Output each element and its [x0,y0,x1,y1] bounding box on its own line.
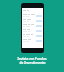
button[interactable] [22,23,43,28]
button[interactable] [22,18,43,23]
staticText: de Investimento [19,61,46,65]
button[interactable] [22,28,43,33]
button[interactable] [22,38,43,43]
staticText: Invista em Fundos [17,57,47,61]
button[interactable] [22,33,43,38]
button[interactable] [22,13,43,18]
button[interactable]: Fundos de investimento [23,10,29,11]
